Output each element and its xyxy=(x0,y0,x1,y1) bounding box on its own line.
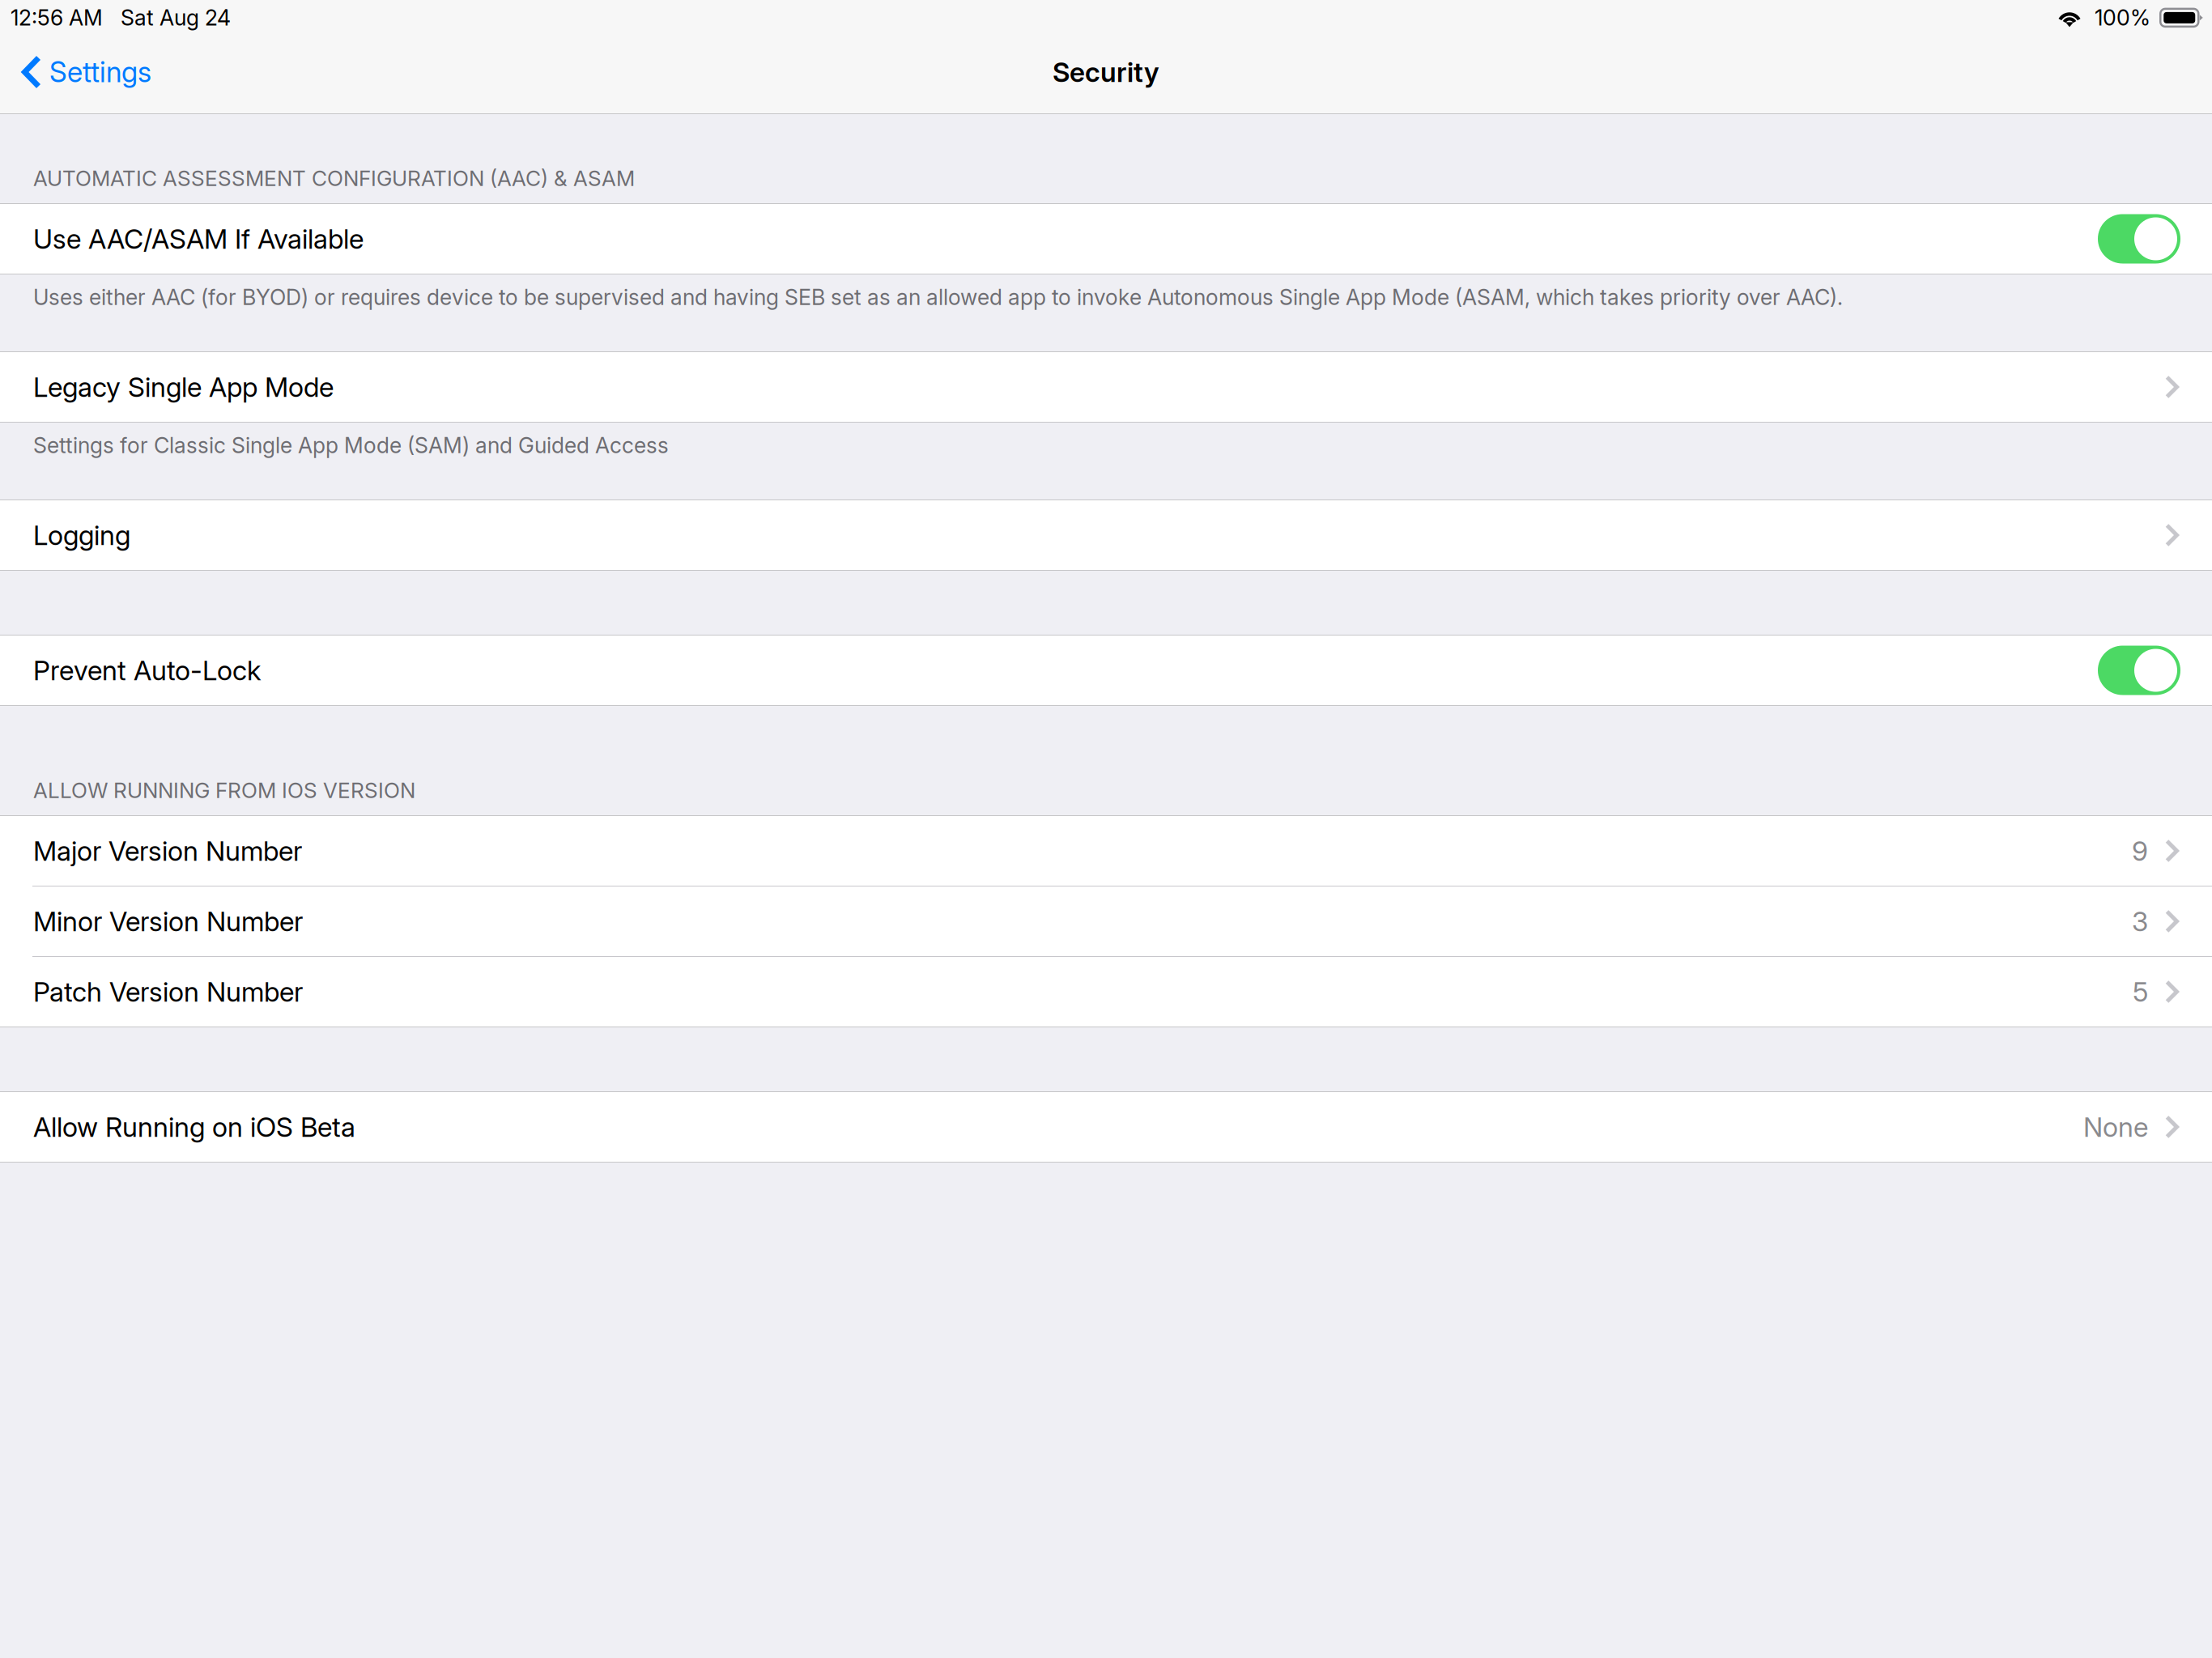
staticText: ALLOW RUNNING FROM IOS VERSION xyxy=(33,778,415,803)
staticText: 5 xyxy=(2133,975,2148,1008)
button[interactable]: Logging xyxy=(0,500,2212,570)
button[interactable]: Minor Version Number xyxy=(0,886,2212,956)
button[interactable]: Patch Version Number xyxy=(0,957,2212,1027)
staticText: AUTOMATIC ASSESSMENT CONFIGURATION (AAC)… xyxy=(33,165,635,191)
staticText: None xyxy=(2083,1111,2148,1143)
button[interactable]: Major Version Number xyxy=(0,816,2212,886)
button[interactable]: Allow Running on iOS Beta xyxy=(0,1092,2212,1162)
staticText: Major Version Number xyxy=(33,835,302,867)
staticText: Allow Running on iOS Beta xyxy=(33,1111,355,1143)
staticText: Use AAC/ASAM If Available xyxy=(33,222,364,255)
staticText: 3 xyxy=(2132,905,2148,938)
staticText: 9 xyxy=(2132,835,2148,867)
staticText: Patch Version Number xyxy=(33,975,303,1008)
staticText: Settings xyxy=(49,55,151,89)
staticText: Prevent Auto-Lock xyxy=(33,654,261,687)
staticText: Security xyxy=(1053,56,1159,88)
staticText: Logging xyxy=(33,519,130,551)
button[interactable]: Back to Settings xyxy=(0,38,166,106)
button[interactable]: Prevent Auto-Lock, on xyxy=(0,636,2212,705)
staticText: Minor Version Number xyxy=(33,905,303,938)
staticText: Settings for Classic Single App Mode (SA… xyxy=(33,432,669,458)
button[interactable]: Use AAC/ASAM If Available, on xyxy=(0,204,2212,274)
staticText: Legacy Single App Mode xyxy=(33,371,334,403)
staticText: Uses either AAC (for BYOD) or requires d… xyxy=(33,284,1843,310)
staticText: 12:56 AM xyxy=(11,5,103,31)
staticText: 100% xyxy=(2095,5,2150,31)
button[interactable]: Legacy Single App Mode xyxy=(0,352,2212,422)
staticText: Sat Aug 24 xyxy=(121,5,231,31)
